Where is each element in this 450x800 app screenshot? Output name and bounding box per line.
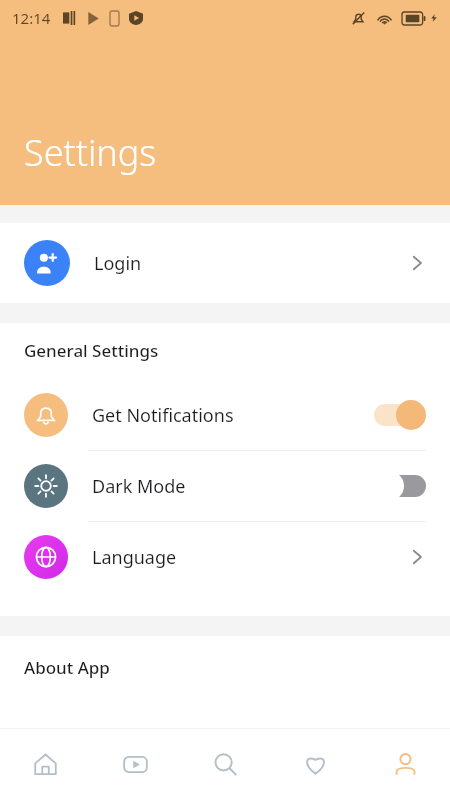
staticText: Login [94,251,142,276]
button[interactable]: Language [0,522,450,592]
staticText: Get Notifications [92,403,234,428]
button[interactable]: Get Notifications [0,380,450,450]
button[interactable]: Home [0,729,90,800]
button[interactable]: Login [0,223,450,303]
staticText: General Settings [24,339,159,362]
staticText: Dark Mode [92,474,186,499]
button[interactable]: Search [180,729,270,800]
button[interactable]: Videos [90,729,180,800]
staticText: About App [24,656,110,679]
staticText: Settings [24,128,157,177]
button[interactable]: Toggle off [374,470,426,502]
button[interactable]: Toggle on [374,399,426,431]
button[interactable]: Dark Mode [0,451,450,521]
button[interactable]: Favorites [270,729,360,800]
staticText: Language [92,545,177,570]
button[interactable]: Profile [360,729,450,800]
staticText: 12:14 [12,8,51,28]
